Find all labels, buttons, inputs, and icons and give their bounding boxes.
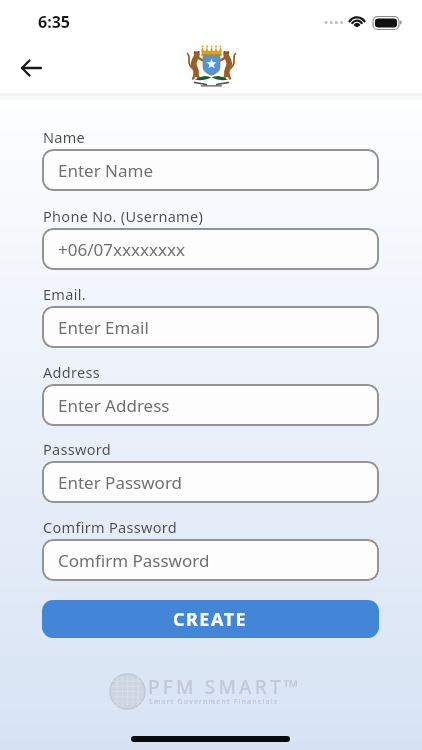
staticText: +06/07xxxxxxxx bbox=[58, 238, 185, 261]
staticText: CREATE bbox=[173, 607, 248, 632]
staticText: Password bbox=[43, 439, 111, 459]
button[interactable]: Enter Name bbox=[42, 149, 379, 191]
staticText: 6:35 bbox=[38, 11, 70, 33]
staticText: Comfirm Password bbox=[43, 517, 177, 537]
staticText: Address bbox=[43, 362, 100, 382]
staticText: Name bbox=[43, 127, 86, 147]
staticText: Phone No. (Username) bbox=[43, 206, 204, 226]
staticText: Enter Password bbox=[58, 471, 183, 494]
button[interactable] bbox=[14, 50, 50, 86]
button[interactable]: Enter Password bbox=[42, 461, 379, 503]
button[interactable]: Comfirm Password bbox=[42, 539, 379, 581]
button[interactable]: CREATE bbox=[42, 600, 379, 638]
staticText: Enter Name bbox=[58, 159, 154, 182]
button[interactable]: Enter Email bbox=[42, 306, 379, 348]
staticText: Enter Address bbox=[58, 394, 170, 417]
staticText: Enter Email bbox=[58, 316, 149, 339]
staticText: PFM SMART™ bbox=[148, 674, 302, 700]
staticText: Smart Government Financials bbox=[149, 697, 279, 706]
staticText: Email. bbox=[43, 284, 86, 304]
button[interactable]: Enter Address bbox=[42, 384, 379, 426]
staticText: Comfirm Password bbox=[58, 549, 210, 572]
button[interactable]: +06/07xxxxxxxx bbox=[42, 228, 379, 270]
